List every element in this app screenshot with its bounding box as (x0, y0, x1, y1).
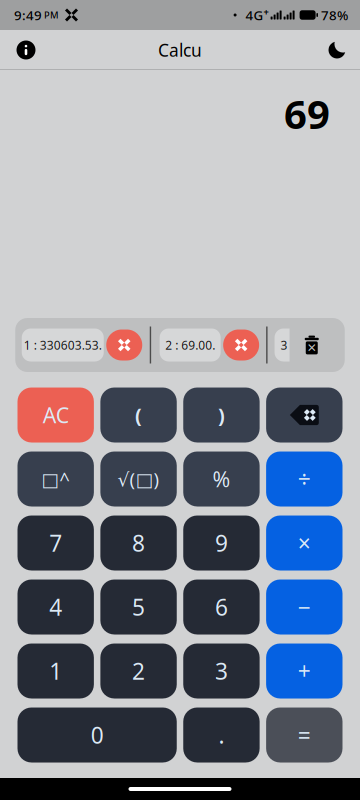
button[interactable]: √(□) (100, 451, 177, 506)
staticText: + (298, 656, 311, 686)
staticText: × (298, 528, 311, 558)
staticText: 5 (132, 592, 145, 622)
button[interactable]: 2 (100, 643, 177, 698)
staticText: PM (42, 9, 59, 21)
staticText: ) (218, 402, 225, 428)
staticText: . (218, 720, 224, 750)
button[interactable]: 3 (275, 328, 290, 361)
button[interactable]: AC (17, 387, 94, 442)
button[interactable]: 7 (17, 515, 94, 570)
staticText: Calcu (158, 38, 202, 61)
staticText: 69 (284, 87, 330, 140)
staticText: ( (135, 402, 142, 428)
staticText: 2 : 69.00. (165, 337, 215, 353)
staticText: 2 (132, 656, 145, 686)
staticText: % (212, 465, 230, 493)
button[interactable]: 6 (183, 579, 260, 634)
button[interactable]: 5 (100, 579, 177, 634)
button[interactable]: Clear history (295, 322, 329, 368)
staticText: = (298, 720, 311, 750)
button[interactable]: ) (183, 387, 260, 442)
staticText: □^ (41, 467, 70, 491)
button[interactable]: ÷ (266, 451, 342, 506)
staticText: √(□) (118, 467, 160, 491)
button[interactable]: □^ (17, 451, 94, 506)
button[interactable]: 1 (17, 643, 94, 698)
button[interactable]: 2 : 69.00. (160, 328, 221, 361)
staticText: 4 (49, 592, 62, 622)
staticText: ✕ (307, 341, 317, 355)
staticText: 1 (49, 656, 62, 686)
staticText: 3 (215, 656, 228, 686)
staticText: 9:49 (14, 6, 42, 24)
staticText: 3 (281, 337, 288, 353)
staticText: AC (43, 401, 69, 429)
button[interactable]: ( (100, 387, 177, 442)
staticText: 7 (49, 528, 62, 558)
button[interactable]: 9 (183, 515, 260, 570)
button[interactable]: − (266, 579, 342, 634)
button[interactable]: Delete entry (106, 329, 142, 360)
staticText: 1 : 330603.53. (24, 337, 102, 353)
staticText: 9 (215, 528, 228, 558)
staticText: 78% (321, 6, 348, 24)
button[interactable]: About (4, 30, 48, 70)
button[interactable]: 4 (17, 579, 94, 634)
button[interactable]: 8 (100, 515, 177, 570)
staticText: 6 (215, 592, 228, 622)
button[interactable]: 0 (17, 707, 177, 762)
button[interactable]: Backspace (266, 387, 342, 442)
staticText: 0 (91, 720, 104, 750)
button[interactable]: . (183, 707, 260, 762)
button[interactable]: × (266, 515, 342, 570)
button[interactable]: 3 (183, 643, 260, 698)
button[interactable]: Toggle dark mode (315, 30, 359, 70)
button[interactable]: Delete entry (223, 329, 259, 360)
button[interactable]: = (266, 707, 342, 762)
staticText: 4G (246, 6, 264, 24)
button[interactable]: 1 : 330603.53. (22, 328, 104, 361)
staticText: + (264, 6, 269, 18)
staticText: 8 (132, 528, 145, 558)
button[interactable]: % (183, 451, 260, 506)
staticText: ÷ (298, 464, 311, 494)
staticText: − (298, 592, 311, 622)
button[interactable]: + (266, 643, 342, 698)
